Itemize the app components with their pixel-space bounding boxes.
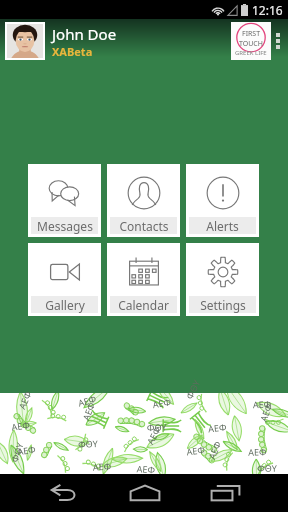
- button[interactable]: Calendar: [107, 243, 180, 316]
- staticText: Contacts: [119, 218, 169, 234]
- staticText: Gallery: [45, 297, 85, 313]
- button[interactable]: Alerts: [186, 164, 259, 237]
- button[interactable]: Recent apps: [201, 474, 249, 512]
- button[interactable]: More options: [271, 22, 285, 60]
- staticText: John Doe: [52, 24, 117, 44]
- button[interactable]: Contacts: [107, 164, 180, 237]
- staticText: Messages: [37, 218, 93, 234]
- staticText: XABeta: [52, 44, 93, 59]
- staticText: Calendar: [118, 297, 169, 313]
- staticText: Alerts: [206, 218, 239, 234]
- button[interactable]: Back: [40, 474, 88, 512]
- staticText: Settings: [200, 297, 246, 313]
- staticText: TOUCH: [239, 39, 263, 49]
- button[interactable]: First Touch Greek Life logo: [231, 22, 271, 60]
- button[interactable]: Gallery: [28, 243, 101, 316]
- button[interactable]: Profile photo: [7, 24, 43, 58]
- button[interactable]: Home: [121, 474, 169, 512]
- staticText: GREEK LIFE: [235, 49, 267, 57]
- staticText: FIRST: [242, 29, 261, 39]
- staticText: 12:16: [252, 2, 283, 18]
- button[interactable]: Settings: [186, 243, 259, 316]
- button[interactable]: Messages: [28, 164, 101, 237]
